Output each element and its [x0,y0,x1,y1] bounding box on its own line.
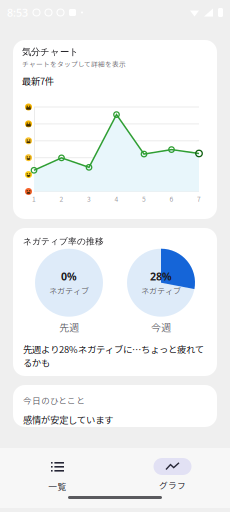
staticText: 0% [61,269,77,284]
staticText: ネガティブ [141,285,181,296]
staticText: 5 [142,194,146,204]
staticText: 6 [169,194,173,204]
staticText: 最新7件 [22,74,54,87]
staticText: ネガティブ率の推移 [23,236,104,247]
button[interactable]: 気分チャート [13,40,217,219]
staticText: 7 [197,194,201,204]
button[interactable]: 一覧 [0,457,115,492]
staticText: 気分チャート [22,46,79,58]
staticText: 2 [59,194,63,204]
staticText: 4 [114,194,118,204]
staticText: 一覧 [48,480,66,492]
staticText: 今週 [151,320,171,334]
staticText: 3 [87,194,91,204]
staticText: 今日のひとこと [23,394,85,406]
staticText: 感情が安定しています [23,412,113,426]
staticText: 1 [32,194,36,204]
staticText: ネガティブ [49,285,89,296]
staticText: グラフ [159,479,186,491]
staticText: 先週より28%ネガティブに…ちょっと疲れてるかも [23,342,204,369]
staticText: 先週 [59,320,79,334]
staticText: 8:53 [7,5,28,20]
button[interactable]: グラフ [115,458,230,491]
staticText: 28% [150,269,172,284]
staticText: チャートをタップして詳細を表示 [22,59,126,69]
